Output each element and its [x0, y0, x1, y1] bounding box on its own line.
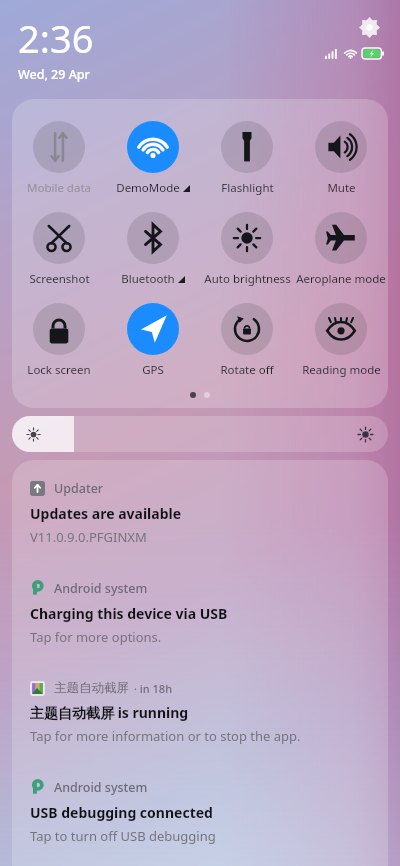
staticText: Tap to turn off USB debugging: [30, 827, 216, 845]
staticText: DemoMode: [116, 180, 180, 196]
staticText: V11.0.9.0.PFGINXM: [30, 528, 147, 546]
button[interactable]: Bluetooth: [106, 210, 200, 289]
button[interactable]: Brightness: [12, 416, 388, 452]
staticText: Aeroplane mode: [296, 271, 386, 287]
staticText: 主题自动截屏 is running: [30, 703, 189, 722]
button[interactable]: Android system: [12, 570, 388, 656]
staticText: GPS: [142, 362, 164, 378]
staticText: Tap for more information or to stop the …: [30, 727, 301, 745]
button[interactable]: Rotate off: [200, 301, 294, 380]
button[interactable]: Flashlight: [200, 119, 294, 198]
staticText: Mobile data: [27, 180, 91, 196]
button[interactable]: Lock screen: [12, 301, 106, 380]
staticText: 主题自动截屏: [54, 680, 129, 696]
staticText: Wed, 29 Apr: [18, 66, 90, 83]
button[interactable]: Android system: [12, 769, 388, 855]
button[interactable]: GPS: [106, 301, 200, 380]
staticText: Charging this device via USB: [30, 604, 228, 623]
staticText: Bluetooth: [121, 271, 175, 287]
button[interactable]: Mobile data: [12, 119, 106, 198]
staticText: Screenshot: [29, 271, 90, 287]
staticText: Lock screen: [27, 362, 91, 378]
staticText: Updates are available: [30, 504, 182, 523]
staticText: USB debugging connected: [30, 803, 213, 822]
button[interactable]: DemoMode: [106, 119, 200, 198]
button[interactable]: Mute: [294, 119, 388, 198]
button[interactable]: Aeroplane mode: [294, 210, 388, 289]
staticText: Flashlight: [221, 180, 274, 196]
button[interactable]: Screenshot: [12, 210, 106, 289]
button[interactable]: Updater: [12, 470, 388, 556]
staticText: · in 18h: [134, 681, 173, 696]
staticText: Android system: [54, 580, 148, 597]
staticText: Auto brightness: [204, 271, 291, 287]
staticText: Tap for more options.: [30, 628, 162, 646]
staticText: Updater: [54, 480, 104, 497]
button[interactable]: 主题自动截屏: [12, 670, 388, 755]
staticText: Android system: [54, 779, 148, 796]
button[interactable]: Auto brightness: [200, 210, 294, 289]
button[interactable]: Reading mode: [294, 301, 388, 380]
staticText: 2:36: [18, 12, 94, 64]
staticText: Mute: [327, 180, 356, 196]
staticText: Rotate off: [220, 362, 274, 378]
button[interactable]: Settings: [354, 12, 384, 42]
staticText: Reading mode: [302, 362, 381, 378]
